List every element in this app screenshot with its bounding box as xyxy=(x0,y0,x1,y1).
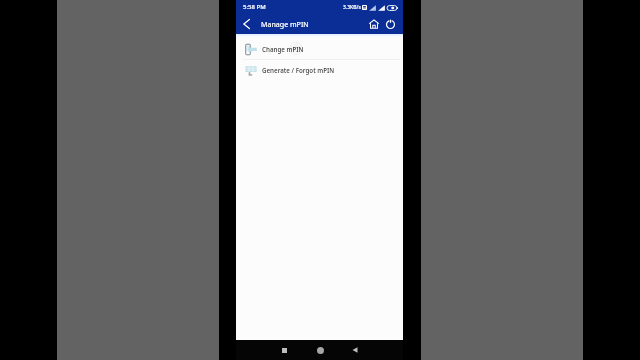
button[interactable]: Change mPIN xyxy=(236,39,403,59)
staticText: 5:58 PM xyxy=(243,3,266,11)
button[interactable]: Home xyxy=(313,343,327,357)
staticText: 3.3KB/s xyxy=(343,4,361,11)
button[interactable]: Back xyxy=(348,343,362,357)
button[interactable]: Generate / Forgot mPIN xyxy=(236,60,403,80)
button[interactable]: Logout xyxy=(383,17,397,31)
button[interactable]: Recent apps xyxy=(277,343,291,357)
button[interactable]: Home xyxy=(367,17,381,31)
button[interactable]: Back xyxy=(239,17,253,31)
staticText: Manage mPIN xyxy=(261,19,309,29)
staticText: Change mPIN xyxy=(262,45,304,53)
staticText: Generate / Forgot mPIN xyxy=(262,66,335,74)
